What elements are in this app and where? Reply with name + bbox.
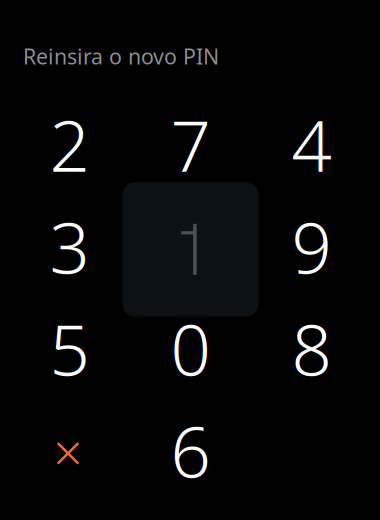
staticText: 4 — [291, 97, 331, 191]
staticText: 7 — [170, 97, 210, 191]
button[interactable]: 9 — [251, 195, 372, 297]
button[interactable]: Delete — [9, 399, 130, 501]
button[interactable]: 0 — [130, 297, 251, 399]
staticText: 9 — [291, 199, 331, 293]
staticText: 6 — [170, 403, 210, 497]
button[interactable]: 6 — [130, 399, 251, 501]
staticText: 5 — [49, 301, 89, 395]
staticText: 0 — [170, 301, 210, 395]
button[interactable]: 2 — [9, 93, 130, 195]
staticText: 2 — [49, 97, 89, 191]
button[interactable]: 8 — [251, 297, 372, 399]
button[interactable]: 3 — [9, 195, 130, 297]
button[interactable]: 1 — [130, 195, 251, 297]
staticText: 8 — [291, 301, 331, 395]
button[interactable]: 4 — [251, 93, 372, 195]
staticText: 3 — [49, 199, 89, 293]
button[interactable]: 7 — [130, 93, 251, 195]
staticText: Reinsira o novo PIN — [23, 42, 219, 70]
button[interactable]: 5 — [9, 297, 130, 399]
